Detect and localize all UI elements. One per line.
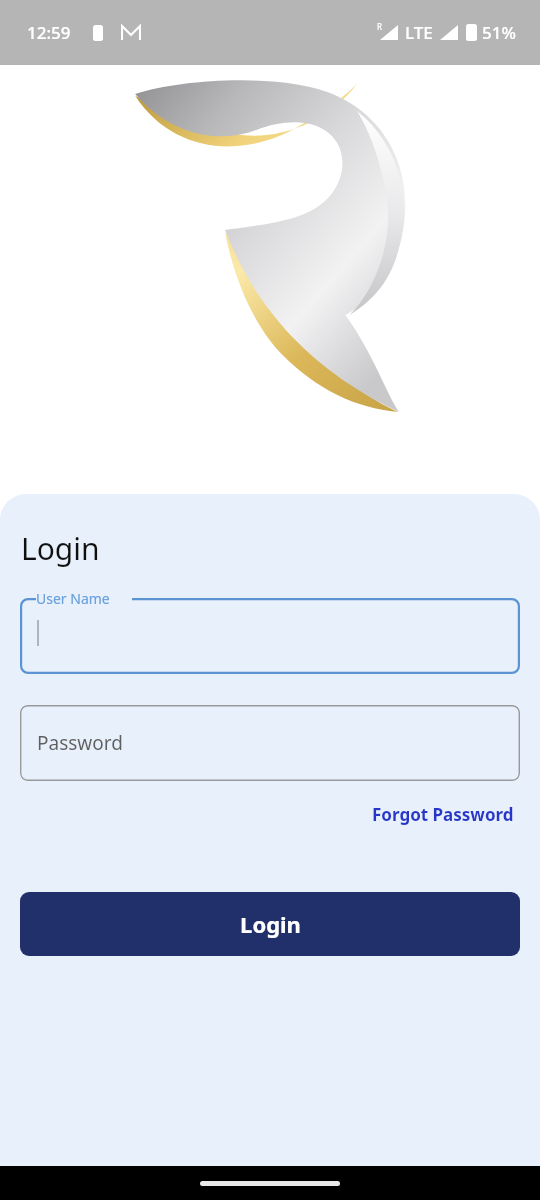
button[interactable]: Password bbox=[20, 705, 520, 781]
button[interactable]: User Name bbox=[20, 598, 520, 674]
staticText: R bbox=[377, 21, 382, 32]
staticText: 12:59 bbox=[27, 21, 71, 44]
staticText: User Name bbox=[36, 589, 110, 608]
staticText: Login bbox=[240, 909, 301, 939]
staticText: LTE bbox=[405, 21, 433, 44]
staticText: Login bbox=[21, 528, 100, 569]
button[interactable]: Forgot Password bbox=[368, 799, 518, 830]
button[interactable]: Login bbox=[20, 892, 520, 956]
staticText: 51% bbox=[482, 21, 516, 44]
staticText: Password bbox=[37, 730, 123, 756]
